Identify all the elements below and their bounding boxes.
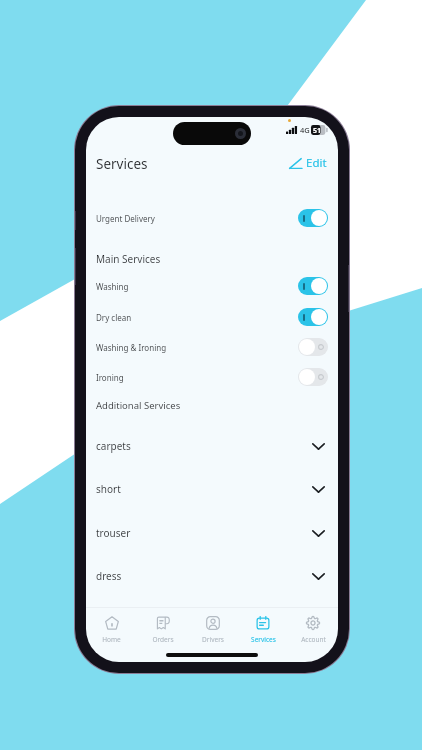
staticText: Services <box>96 155 148 173</box>
staticText: Home <box>102 635 121 642</box>
button[interactable]: Account <box>288 612 338 642</box>
button[interactable]: Washing <box>86 273 338 299</box>
staticText: Services <box>251 635 276 642</box>
button[interactable]: Ironing <box>86 364 338 390</box>
staticText: dress <box>96 569 122 583</box>
button[interactable]: short <box>86 472 338 506</box>
staticText: Orders <box>152 635 174 642</box>
staticText: Main Services <box>96 252 161 266</box>
staticText: Dry clean <box>96 312 132 323</box>
button[interactable]: Washing & Ironing <box>86 334 338 360</box>
staticText: Edit <box>306 155 327 171</box>
staticText: Washing <box>96 281 129 292</box>
staticText: short <box>96 482 121 496</box>
staticText: trouser <box>96 526 131 540</box>
button[interactable]: dress <box>86 559 338 593</box>
staticText: Drivers <box>202 635 224 642</box>
button[interactable]: Urgent Delivery <box>86 205 338 231</box>
button[interactable]: Services <box>238 612 288 642</box>
staticText: carpets <box>96 439 131 453</box>
staticText: 4G <box>300 125 310 135</box>
button[interactable]: Drivers <box>188 612 238 642</box>
button[interactable]: Home <box>86 612 137 642</box>
button[interactable]: trouser <box>86 516 338 550</box>
staticText: Ironing <box>96 372 124 383</box>
staticText: Washing & Ironing <box>96 342 167 353</box>
button[interactable]: Edit <box>285 152 331 174</box>
staticText: 51 <box>313 126 322 136</box>
button[interactable]: Orders <box>137 612 188 642</box>
button[interactable]: carpets <box>86 429 338 463</box>
button[interactable]: Dry clean <box>86 304 338 330</box>
staticText: Account <box>301 635 326 642</box>
staticText: Additional Services <box>96 399 181 412</box>
staticText: Urgent Delivery <box>96 213 155 224</box>
